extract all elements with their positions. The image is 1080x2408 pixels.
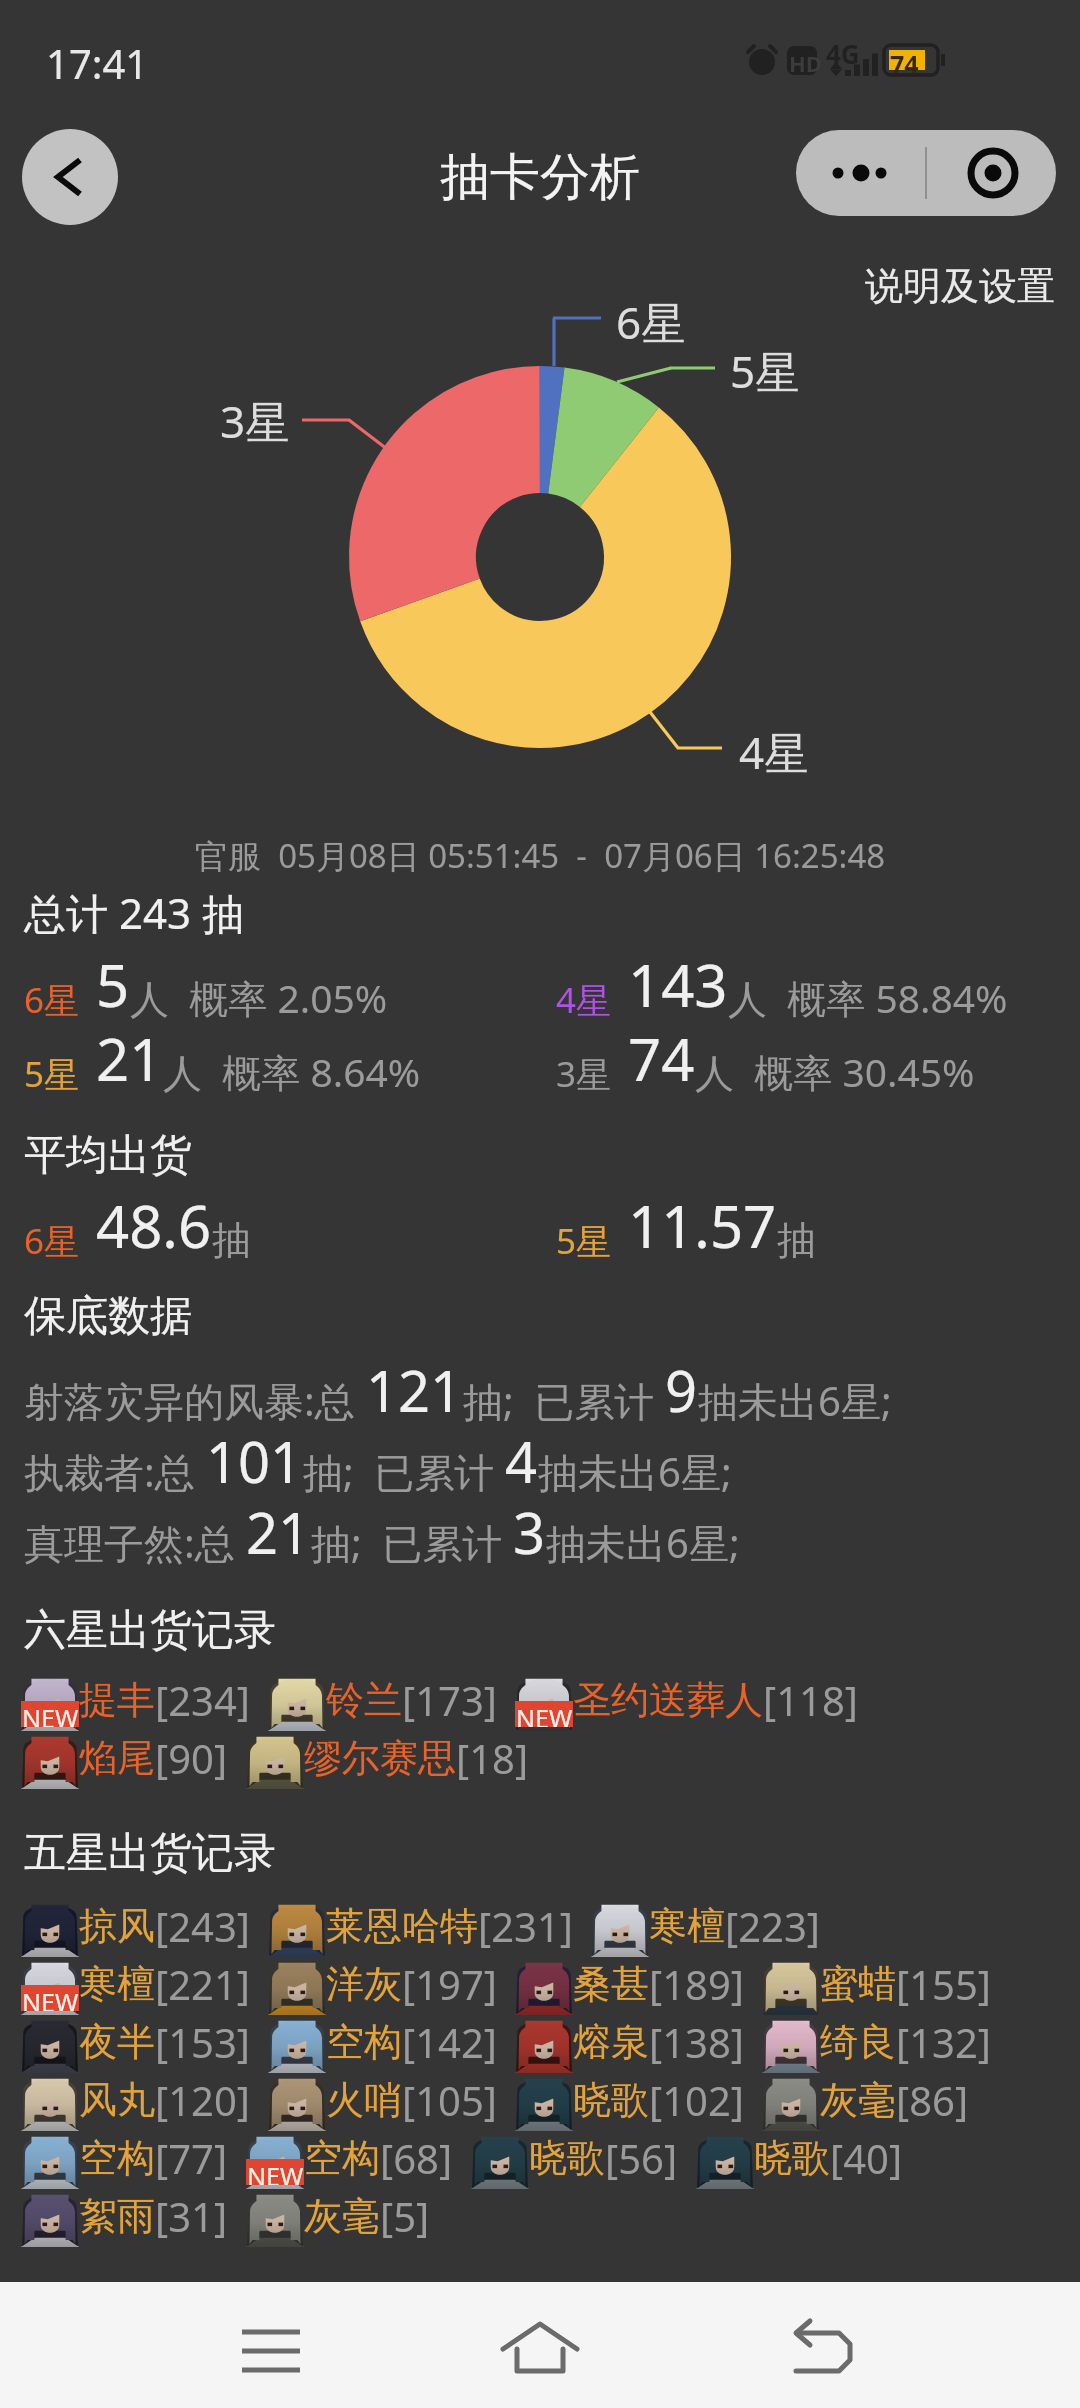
staticText: [102] xyxy=(649,2073,744,2127)
staticText: 熔泉 xyxy=(573,2018,649,2066)
staticText: 灰毫 xyxy=(304,2192,380,2240)
staticText: 人 概率 2.05% xyxy=(130,971,388,1024)
staticText: NEW xyxy=(22,1985,79,2011)
staticText: 缪尔赛思 xyxy=(304,1734,456,1782)
staticText: [86] xyxy=(896,2073,969,2127)
button[interactable]: NEW xyxy=(21,1957,250,2015)
button[interactable]: 絮雨 xyxy=(21,2189,228,2247)
staticText: [18] xyxy=(456,1731,529,1785)
staticText: HD xyxy=(789,48,822,78)
button[interactable]: 莱恩哈特 xyxy=(268,1899,573,1957)
staticText: 官服 05月08日 05:51:45 - 07月06日 16:25:48 xyxy=(195,833,886,878)
button[interactable]: 洋灰 xyxy=(268,1957,497,2015)
staticText: 提丰 xyxy=(79,1676,155,1724)
button[interactable]: Recent apps xyxy=(201,2288,341,2408)
staticText: 寒檀 xyxy=(79,1960,155,2008)
button[interactable]: NEW xyxy=(246,2131,453,2189)
staticText: 11.57 xyxy=(628,1186,777,1265)
staticText: 平均出货 xyxy=(24,1129,192,1182)
staticText: 桑甚 xyxy=(573,1960,649,2008)
staticText: [40] xyxy=(830,2131,903,2185)
staticText: [5] xyxy=(380,2189,430,2243)
button[interactable]: 铃兰 xyxy=(268,1673,497,1731)
staticText: 人 概率 8.64% xyxy=(163,1045,421,1098)
staticText: 抽未出6星; xyxy=(546,1515,740,1570)
staticText: [234] xyxy=(155,1673,250,1727)
button[interactable]: 绮良 xyxy=(762,2015,991,2073)
staticText: 21 xyxy=(246,1494,311,1570)
staticText: 抽 xyxy=(212,1216,251,1265)
staticText: 晓歌 xyxy=(573,2076,649,2124)
staticText: 执裁者:总 xyxy=(24,1444,206,1499)
button[interactable]: 晓歌 xyxy=(471,2131,678,2189)
staticText: 空构 xyxy=(304,2134,380,2182)
button[interactable]: NEW xyxy=(515,1673,858,1731)
staticText: 143 xyxy=(628,945,728,1024)
staticText: 圣约送葬人 xyxy=(573,1676,763,1724)
button[interactable]: More options xyxy=(796,130,926,216)
staticText: 抽 xyxy=(777,1216,816,1265)
staticText: [118] xyxy=(763,1673,858,1727)
button[interactable]: 空构 xyxy=(21,2131,228,2189)
button[interactable]: 熔泉 xyxy=(515,2015,744,2073)
staticText: 74 xyxy=(628,1019,695,1098)
staticText: 保底数据 xyxy=(24,1290,192,1343)
staticText: 人 概率 30.45% xyxy=(695,1045,975,1098)
button[interactable]: 风丸 xyxy=(21,2073,250,2131)
staticText: [142] xyxy=(402,2015,497,2069)
staticText: 3 xyxy=(513,1494,546,1570)
staticText: 3星 xyxy=(220,391,290,451)
button[interactable]: 晓歌 xyxy=(515,2073,744,2131)
staticText: [56] xyxy=(605,2131,678,2185)
staticText: 121 xyxy=(366,1352,463,1428)
staticText: [120] xyxy=(155,2073,250,2127)
staticText: 抽; 已累计 xyxy=(303,1444,505,1499)
staticText: 抽; 已累计 xyxy=(463,1373,665,1428)
staticText: [105] xyxy=(402,2073,497,2127)
staticText: NEW xyxy=(516,1701,573,1727)
button[interactable]: 夜半 xyxy=(21,2015,250,2073)
staticText: 焰尾 xyxy=(79,1734,155,1782)
button[interactable]: Back xyxy=(753,2288,893,2408)
button[interactable]: 晓歌 xyxy=(696,2131,903,2189)
staticText: 射落灾异的风暴:总 xyxy=(24,1373,366,1428)
staticText: [243] xyxy=(155,1899,250,1953)
staticText: 晓歌 xyxy=(529,2134,605,2182)
button[interactable]: 空构 xyxy=(268,2015,497,2073)
button[interactable]: Home xyxy=(470,2288,610,2408)
button[interactable]: 缪尔赛思 xyxy=(246,1731,529,1789)
button[interactable]: Close mini program xyxy=(926,130,1056,216)
button[interactable]: 掠风 xyxy=(21,1899,250,1957)
staticText: 铃兰 xyxy=(326,1676,402,1724)
staticText: 5 xyxy=(96,945,130,1024)
staticText: 绮良 xyxy=(820,2018,896,2066)
staticText: 5星 xyxy=(730,341,800,401)
staticText: 寒檀 xyxy=(649,1902,725,1950)
button[interactable]: Back xyxy=(22,129,118,225)
button[interactable]: 说明及设置 xyxy=(865,258,1080,314)
staticText: 真理子然:总 xyxy=(24,1515,246,1570)
staticText: [90] xyxy=(155,1731,228,1785)
staticText: 4星 xyxy=(556,976,612,1024)
button[interactable]: 灰毫 xyxy=(246,2189,430,2247)
staticText: 总计 243 抽 xyxy=(24,884,244,941)
staticText: [173] xyxy=(402,1673,497,1727)
staticText: 抽卡分析 xyxy=(440,146,640,209)
staticText: 夜半 xyxy=(79,2018,155,2066)
staticText: [132] xyxy=(896,2015,991,2069)
button[interactable]: 桑甚 xyxy=(515,1957,744,2015)
button[interactable]: 火哨 xyxy=(268,2073,497,2131)
staticText: 六星出货记录 xyxy=(24,1604,276,1657)
button[interactable]: NEW xyxy=(21,1673,250,1731)
button[interactable]: 蜜蜡 xyxy=(762,1957,991,2015)
staticText: 抽未出6星; xyxy=(698,1373,892,1428)
staticText: [231] xyxy=(478,1899,573,1953)
staticText: [77] xyxy=(155,2131,228,2185)
button[interactable]: 焰尾 xyxy=(21,1731,228,1789)
button[interactable]: 寒檀 xyxy=(591,1899,820,1957)
staticText: 人 概率 58.84% xyxy=(728,971,1008,1024)
staticText: [68] xyxy=(380,2131,453,2185)
staticText: 空构 xyxy=(326,2018,402,2066)
button[interactable]: 灰毫 xyxy=(762,2073,969,2131)
staticText: 蜜蜡 xyxy=(820,1960,896,2008)
